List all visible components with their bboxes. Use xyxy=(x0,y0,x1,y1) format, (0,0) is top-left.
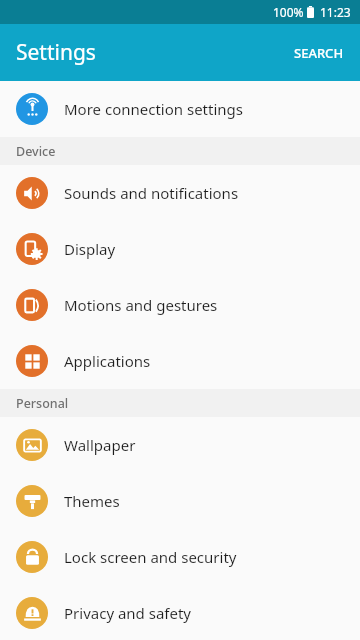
button[interactable]: Display xyxy=(0,221,360,277)
other: More connection settings xyxy=(16,93,48,125)
staticText: Applications xyxy=(64,351,151,371)
staticText: Wallpaper xyxy=(64,435,136,455)
other: Sounds and notifications xyxy=(16,177,48,209)
staticText: 100% xyxy=(273,4,304,20)
staticText: More connection settings xyxy=(64,99,243,119)
staticText: Themes xyxy=(64,491,120,511)
button[interactable]: SEARCH xyxy=(278,24,360,81)
staticText: SEARCH xyxy=(294,44,344,62)
button[interactable]: Wallpaper xyxy=(0,417,360,473)
staticText: Sounds and notifications xyxy=(64,183,239,203)
other: Privacy and safety xyxy=(16,597,48,629)
other: Themes xyxy=(16,485,48,517)
button[interactable]: Themes xyxy=(0,473,360,529)
staticText: Personal xyxy=(16,395,69,412)
staticText: 11:23 xyxy=(320,4,351,20)
button[interactable]: Motions and gestures xyxy=(0,277,360,333)
staticText: Lock screen and security xyxy=(64,547,237,567)
button[interactable]: Applications xyxy=(0,333,360,389)
other: Lock screen and security xyxy=(16,541,48,573)
staticText: Privacy and safety xyxy=(64,603,192,623)
button[interactable]: Lock screen and security xyxy=(0,529,360,585)
staticText: Display xyxy=(64,239,116,259)
button[interactable]: More connection settings xyxy=(0,81,360,137)
other: Motions and gestures xyxy=(16,289,48,321)
other: Applications xyxy=(16,345,48,377)
button[interactable]: Sounds and notifications xyxy=(0,165,360,221)
staticText: Settings xyxy=(16,38,96,67)
staticText: Device xyxy=(16,143,56,160)
staticText: Motions and gestures xyxy=(64,295,218,315)
other: Wallpaper xyxy=(16,429,48,461)
button[interactable]: Privacy and safety xyxy=(0,585,360,640)
other: Display xyxy=(16,233,48,265)
